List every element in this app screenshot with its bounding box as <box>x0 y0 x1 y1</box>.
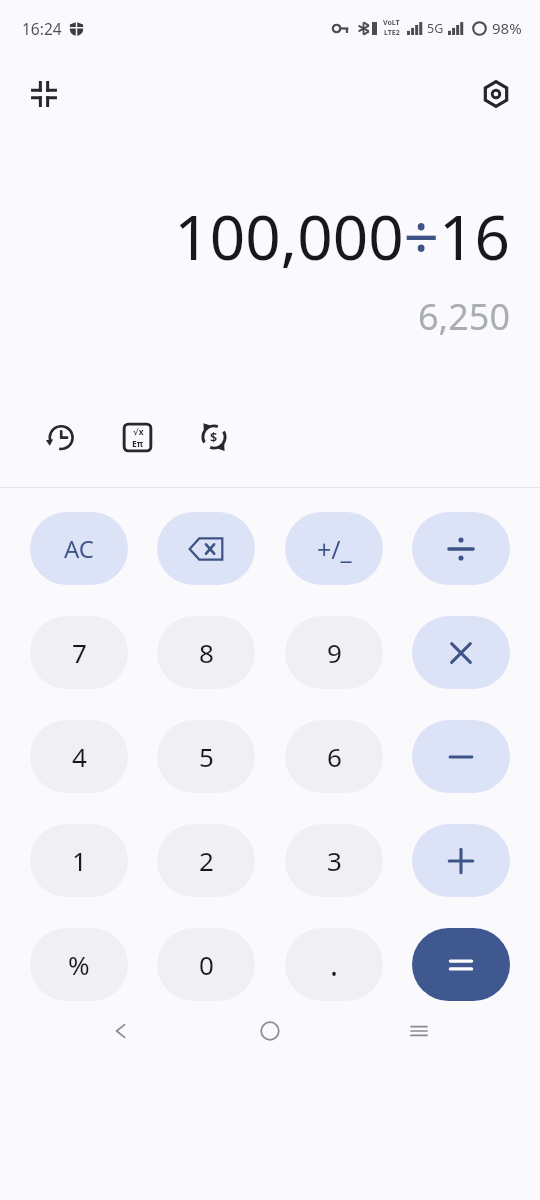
button[interactable]: 5 <box>157 720 255 793</box>
staticText: $ <box>210 429 218 446</box>
button[interactable]: Home <box>242 1003 298 1059</box>
button[interactable]: Divide <box>412 512 510 585</box>
button[interactable]: Recent apps <box>391 1003 447 1059</box>
staticText: √x <box>133 426 144 438</box>
staticText: 6,250 <box>0 292 510 341</box>
staticText: 4 <box>72 739 87 774</box>
button[interactable]: 4 <box>30 720 128 793</box>
button[interactable]: 9 <box>285 616 383 689</box>
button[interactable]: . <box>285 928 383 1001</box>
button[interactable]: Equals <box>412 928 510 1001</box>
staticText: 0 <box>199 947 214 982</box>
staticText: 1 <box>72 843 87 878</box>
button[interactable]: Settings <box>470 68 522 120</box>
staticText: 2 <box>199 843 214 878</box>
staticText: LTE2 <box>384 28 400 38</box>
button[interactable]: 0 <box>157 928 255 1001</box>
staticText: +/_ <box>317 532 352 566</box>
button[interactable]: Add <box>412 824 510 897</box>
button[interactable]: 7 <box>30 616 128 689</box>
staticText: 16:24 <box>22 18 62 39</box>
button[interactable]: Backspace <box>157 512 255 585</box>
staticText: . <box>330 944 339 985</box>
staticText: 5 <box>199 739 214 774</box>
button[interactable]: History <box>34 411 86 463</box>
staticText: 7 <box>72 635 87 670</box>
button[interactable]: Scientific functions <box>111 411 163 463</box>
staticText: 9 <box>327 635 342 670</box>
button[interactable]: AC <box>30 512 128 585</box>
button[interactable]: Collapse <box>18 68 70 120</box>
staticText: 5G <box>427 20 444 37</box>
staticText: % <box>68 947 90 982</box>
button[interactable]: Toggle sign <box>285 512 383 585</box>
button[interactable]: Multiply <box>412 616 510 689</box>
staticText: AC <box>64 532 95 565</box>
staticText: 100,000÷16 <box>0 194 510 278</box>
staticText: 8 <box>199 635 214 670</box>
staticText: 3 <box>327 843 342 878</box>
button[interactable]: 2 <box>157 824 255 897</box>
button[interactable]: Subtract <box>412 720 510 793</box>
button[interactable]: 6 <box>285 720 383 793</box>
staticText: Eπ <box>132 438 144 450</box>
button[interactable]: % <box>30 928 128 1001</box>
button[interactable]: Back <box>93 1003 149 1059</box>
staticText: 98% <box>492 18 522 38</box>
staticText: VoLT <box>383 18 400 28</box>
button[interactable]: Currency converter <box>188 411 240 463</box>
staticText: 6 <box>327 739 342 774</box>
button[interactable]: 3 <box>285 824 383 897</box>
button[interactable]: 1 <box>30 824 128 897</box>
button[interactable]: 8 <box>157 616 255 689</box>
